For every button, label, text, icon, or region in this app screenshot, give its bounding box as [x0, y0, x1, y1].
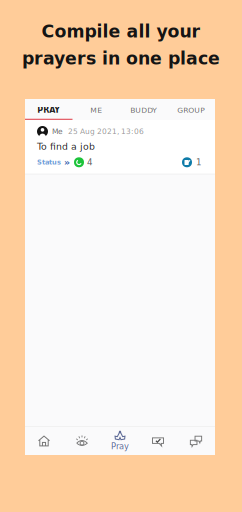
button[interactable]: Home [25, 427, 63, 455]
button[interactable]: Me [25, 120, 215, 174]
button[interactable]: ME [72, 99, 120, 120]
staticText: BUDDY [130, 106, 157, 114]
button[interactable]: Chat [177, 427, 215, 455]
staticText: 1 [196, 157, 202, 167]
staticText: To find a job [37, 141, 95, 152]
button[interactable]: Pray [101, 427, 139, 455]
staticText: ME [90, 106, 102, 114]
staticText: GROUP [177, 106, 205, 114]
staticText: Me [52, 127, 63, 136]
staticText: PRAY [37, 105, 60, 115]
staticText: Status [37, 158, 61, 166]
staticText: » [64, 157, 70, 168]
staticText: Pray [111, 442, 129, 451]
staticText: 4 [87, 157, 93, 167]
button[interactable]: BUDDY [120, 99, 167, 120]
button[interactable]: Requests [139, 427, 177, 455]
staticText: 25 Aug 2021, 13:06 [68, 127, 144, 136]
button[interactable]: Watch [63, 427, 101, 455]
staticText: Compile all your [41, 21, 200, 42]
staticText: prayers in one place [22, 48, 220, 69]
button[interactable]: PRAY [25, 99, 72, 120]
button[interactable]: GROUP [167, 99, 215, 120]
